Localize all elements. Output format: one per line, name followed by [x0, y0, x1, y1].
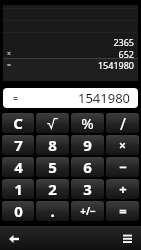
staticText: 8 — [48, 135, 57, 155]
button[interactable]: 8 — [36, 135, 69, 155]
button[interactable]: = — [106, 201, 139, 221]
button[interactable]: 7 — [2, 135, 34, 155]
staticText: C — [13, 113, 23, 133]
staticText: × — [119, 137, 126, 153]
staticText: % — [81, 113, 94, 133]
staticText: 3 — [83, 179, 92, 199]
staticText: 1541980 — [19, 89, 130, 107]
staticText: − — [119, 158, 127, 176]
staticText: = — [7, 60, 12, 70]
button[interactable]: × — [106, 135, 139, 155]
staticText: 6 — [83, 157, 92, 177]
staticText: = — [119, 202, 127, 220]
button[interactable]: × — [7, 48, 134, 59]
staticText: / — [120, 113, 126, 133]
button[interactable]: 9 — [71, 135, 104, 155]
staticText: × — [7, 49, 12, 59]
staticText: + — [119, 180, 127, 198]
staticText: 1541980 — [12, 59, 134, 70]
button[interactable]: 2 — [36, 179, 69, 199]
button[interactable]: 3 — [71, 179, 104, 199]
button[interactable]: % — [71, 113, 104, 133]
staticText: 2 — [48, 179, 57, 199]
button[interactable]: − — [106, 157, 139, 177]
button[interactable]: = — [3, 88, 138, 108]
staticText: = — [13, 92, 19, 104]
button[interactable]: 1 — [2, 179, 34, 199]
staticText: 9 — [83, 135, 92, 155]
staticText: 5 — [48, 157, 57, 177]
button[interactable]: C — [2, 113, 34, 133]
button[interactable]: . — [36, 201, 69, 221]
staticText: +/− — [80, 204, 96, 218]
staticText: 4 — [14, 157, 23, 177]
button[interactable]: +/− — [71, 201, 104, 221]
button[interactable]: Square root — [36, 113, 69, 133]
button[interactable]: 0 — [2, 201, 34, 221]
button[interactable]: 6 — [71, 157, 104, 177]
button[interactable]: Menu — [118, 229, 137, 248]
button[interactable]: / — [106, 113, 139, 133]
staticText: 2365 — [7, 36, 134, 47]
staticText: 0 — [14, 201, 23, 221]
button[interactable]: = — [7, 59, 134, 70]
button[interactable]: 5 — [36, 157, 69, 177]
staticText: 1 — [14, 179, 23, 199]
button[interactable]: 2365 — [7, 36, 134, 47]
staticText: 652 — [12, 48, 134, 59]
button[interactable]: Back — [4, 229, 23, 248]
staticText: 7 — [14, 135, 23, 155]
button[interactable]: 4 — [2, 157, 34, 177]
staticText: . — [50, 201, 55, 221]
button[interactable]: + — [106, 179, 139, 199]
